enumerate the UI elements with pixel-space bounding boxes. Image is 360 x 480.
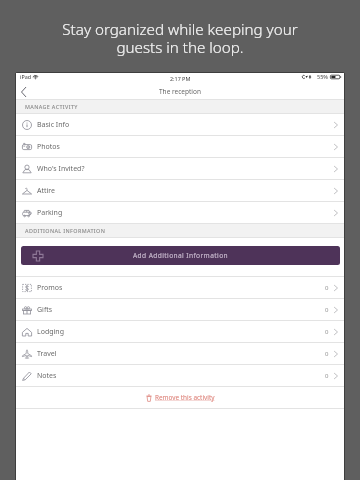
button[interactable]: Add Additional Information <box>21 246 340 265</box>
staticText: The reception <box>159 87 201 96</box>
staticText: 0 <box>325 328 329 336</box>
button[interactable]: Lodging <box>16 321 344 342</box>
staticText: iPad <box>20 73 32 80</box>
staticText: 0 <box>325 284 329 292</box>
staticText: Add Additional Information <box>133 251 229 260</box>
staticText: ADDITIONAL INFORMATION <box>25 227 106 234</box>
button[interactable]: Back <box>16 84 30 99</box>
staticText: 0 <box>325 372 329 380</box>
staticText: Travel <box>37 349 57 359</box>
button[interactable]: Attire <box>16 180 344 201</box>
staticText: 0 <box>325 306 329 314</box>
staticText: 0 <box>325 350 329 358</box>
staticText: Promos <box>37 283 63 293</box>
staticText: 2:17 PM <box>170 75 191 82</box>
staticText: MANAGE ACTIVITY <box>25 103 78 110</box>
staticText: 55% <box>317 73 328 80</box>
button[interactable]: Basic Info <box>16 114 344 135</box>
staticText: Who's Invited? <box>37 164 85 174</box>
staticText: Lodging <box>37 327 64 337</box>
button[interactable]: Travel <box>16 343 344 364</box>
staticText: Notes <box>37 371 57 381</box>
button[interactable]: Remove this activity <box>16 387 344 408</box>
staticText: Attire <box>37 186 56 196</box>
button[interactable]: Who's Invited? <box>16 158 344 179</box>
staticText: Stay organized while keeping your guests… <box>62 19 298 57</box>
button[interactable]: Notes <box>16 365 344 386</box>
staticText: Photos <box>37 142 60 152</box>
staticText: Gifts <box>37 305 53 315</box>
button[interactable]: Promos <box>16 277 344 298</box>
button[interactable]: Parking <box>16 202 344 223</box>
staticText: Basic Info <box>37 120 70 130</box>
button[interactable]: Photos <box>16 136 344 157</box>
button[interactable]: Gifts <box>16 299 344 320</box>
staticText: Parking <box>37 208 63 218</box>
staticText: Remove this activity <box>155 393 215 402</box>
